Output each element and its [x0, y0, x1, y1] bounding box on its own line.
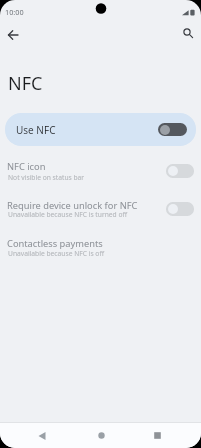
button[interactable]: Use NFC	[5, 113, 196, 146]
button[interactable]	[91, 423, 111, 448]
button[interactable]: Contactless payments	[0, 231, 201, 270]
staticText: Contactless payments	[7, 237, 103, 250]
staticText: Unavailable because NFC is turned off	[8, 210, 128, 219]
button[interactable]	[179, 24, 198, 43]
button[interactable]	[147, 423, 167, 448]
staticText: Unavailable because NFC is off	[8, 249, 104, 258]
staticText: 10:00	[5, 7, 24, 17]
button[interactable]: Require device unlock for NFC	[0, 192, 201, 231]
staticText: NFC	[8, 71, 43, 96]
button[interactable]	[32, 423, 52, 448]
button[interactable]	[158, 123, 187, 136]
staticText: NFC icon	[7, 160, 46, 173]
staticText: Use NFC	[16, 123, 56, 137]
staticText: Require device unlock for NFC	[7, 199, 138, 212]
button[interactable]	[4, 26, 23, 45]
button[interactable]: NFC icon	[0, 152, 201, 192]
staticText: Not visible on status bar	[8, 173, 85, 182]
